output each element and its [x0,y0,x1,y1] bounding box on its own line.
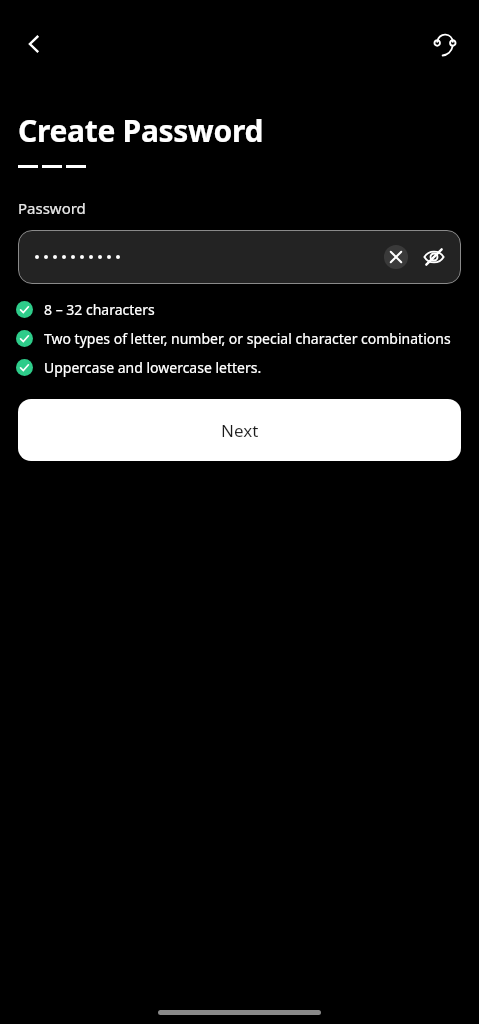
button[interactable]: Customer support [421,20,469,68]
button[interactable]: Next [18,399,461,461]
staticText: Create Password [18,110,264,151]
button[interactable]: Clear [18,230,461,284]
staticText: Two types of letter, number, or special … [44,329,451,348]
staticText: Next [221,419,259,442]
button[interactable]: Back [10,20,58,68]
button[interactable]: Clear [379,240,413,274]
button[interactable]: Show password [415,238,453,276]
staticText: Uppercase and lowercase letters. [44,358,262,377]
staticText: 8 – 32 characters [44,300,155,319]
staticText: Password [18,198,86,218]
